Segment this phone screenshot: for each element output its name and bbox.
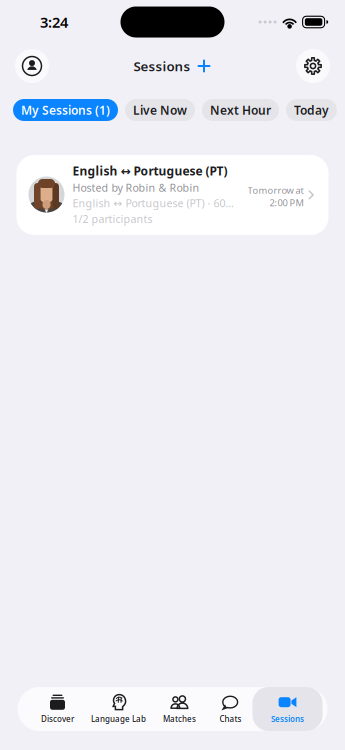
button[interactable]: Settings [296, 49, 330, 83]
staticText: 3:24 [40, 12, 68, 32]
staticText: English ↔ Portuguese (PT) [72, 163, 227, 179]
staticText: Sessions [133, 57, 190, 75]
button[interactable]: English ↔ Portuguese (PT) [16, 155, 328, 235]
staticText: Tomorrow at [247, 184, 303, 196]
staticText: Today [294, 102, 329, 118]
button[interactable]: Language Lab [84, 687, 152, 731]
button[interactable]: Sessions [252, 687, 322, 731]
staticText: 2:00 PM [269, 196, 303, 209]
staticText: Language Lab [91, 714, 146, 724]
staticText: My Sessions (1) [21, 102, 110, 118]
button[interactable]: Next Hour [202, 99, 279, 121]
button[interactable]: Profile [15, 49, 49, 83]
staticText: Next Hour [210, 102, 271, 118]
staticText: Matches [163, 714, 196, 724]
button[interactable]: Chats [207, 687, 253, 731]
staticText: Hosted by Robin & Robin [72, 180, 199, 195]
button[interactable]: Today [286, 99, 337, 121]
staticText: Live Now [133, 102, 187, 118]
staticText: Chats [219, 714, 241, 724]
staticText: English ↔ Portuguese (PT) · 60… [72, 196, 233, 210]
staticText: 1/2 participants [72, 212, 152, 226]
button[interactable]: My Sessions (1) [13, 99, 118, 121]
button[interactable]: Discover [30, 687, 84, 731]
button[interactable]: Matches [152, 687, 206, 731]
staticText: Discover [41, 714, 74, 724]
button[interactable]: Live Now [125, 99, 195, 121]
button[interactable]: New session [196, 58, 211, 73]
staticText: Sessions [271, 714, 304, 724]
